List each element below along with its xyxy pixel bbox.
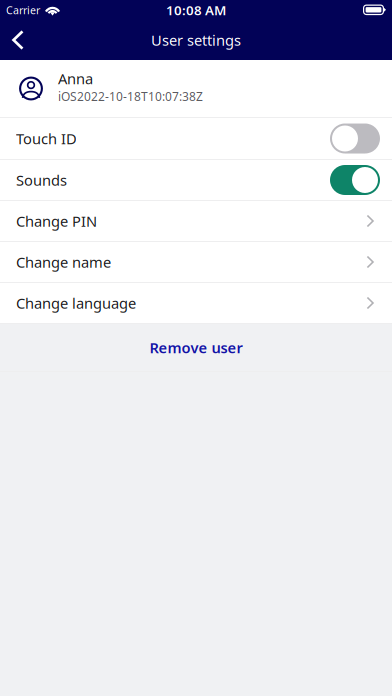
staticText: Touch ID [16, 129, 77, 148]
button[interactable]: Back [0, 20, 36, 60]
button[interactable]: Anna [0, 60, 392, 117]
button[interactable]: Touch ID [0, 118, 392, 159]
staticText: Change name [16, 252, 111, 272]
staticText: Anna [58, 69, 93, 88]
staticText: iOS2022-10-18T10:07:38Z [58, 88, 203, 104]
staticText: User settings [151, 30, 241, 50]
button[interactable]: Change name [0, 242, 392, 282]
button[interactable]: Sounds [0, 160, 392, 200]
button[interactable]: Change PIN [0, 201, 392, 241]
staticText: Remove user [149, 338, 242, 357]
button[interactable]: Change language [0, 283, 392, 323]
staticText: Change language [16, 293, 136, 313]
staticText: Sounds [16, 170, 67, 190]
staticText: Carrier [6, 3, 40, 17]
staticText: 10:08 AM [166, 1, 226, 19]
staticText: Change PIN [16, 211, 97, 231]
button[interactable]: Remove user [0, 324, 392, 371]
